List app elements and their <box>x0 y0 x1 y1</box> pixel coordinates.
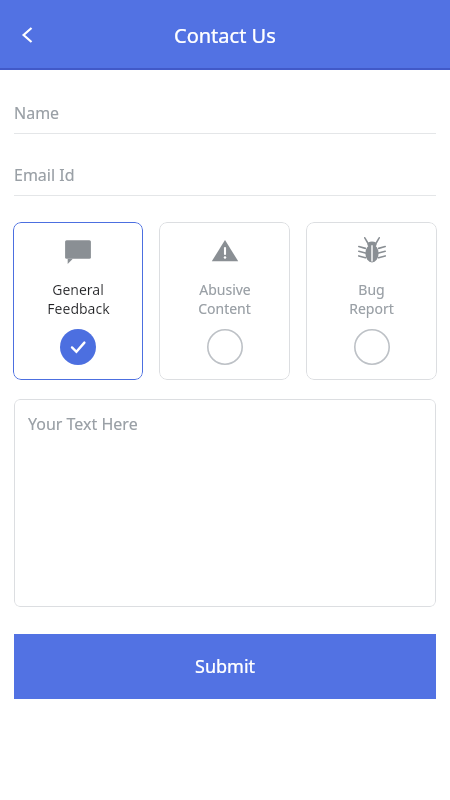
button[interactable]: Submit <box>14 634 436 699</box>
button[interactable]: Your Text Here <box>14 399 436 607</box>
button[interactable]: Abusive <box>159 222 290 380</box>
staticText: Report <box>349 299 394 318</box>
button[interactable]: Back <box>6 13 50 57</box>
button[interactable]: Email Id <box>14 164 436 196</box>
staticText: Content <box>198 299 251 318</box>
staticText: Email Id <box>14 164 75 186</box>
staticText: Name <box>14 102 60 124</box>
button[interactable]: Bug <box>306 222 437 380</box>
staticText: General <box>52 280 104 299</box>
button[interactable]: Name <box>14 102 436 134</box>
staticText: Submit <box>195 654 256 679</box>
staticText: Contact Us <box>174 22 276 49</box>
staticText: Abusive <box>199 280 251 299</box>
staticText: Bug <box>358 280 385 299</box>
button[interactable]: General <box>13 222 143 380</box>
staticText: Feedback <box>47 299 110 318</box>
staticText: Your Text Here <box>28 413 138 435</box>
